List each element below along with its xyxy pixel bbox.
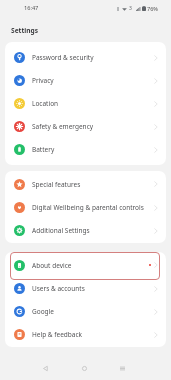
staticText: About device (32, 261, 72, 270)
staticText: 16:47 (24, 4, 39, 12)
button[interactable]: About device (5, 253, 166, 277)
button[interactable]: Help & feedback (5, 323, 166, 346)
button[interactable]: Back (36, 359, 54, 377)
button[interactable]: Privacy (5, 69, 166, 92)
staticText: Users & accounts (32, 284, 85, 293)
staticText: Special features (32, 180, 81, 189)
staticText: Google (32, 307, 54, 316)
button[interactable]: Digital Wellbeing & parental controls (5, 196, 166, 219)
staticText: Password & security (32, 53, 94, 62)
button[interactable]: Recents (113, 359, 131, 377)
button[interactable]: Additional Settings (5, 219, 166, 242)
button[interactable]: Password & security (5, 46, 166, 69)
staticText: Location (32, 99, 59, 108)
staticText: Battery (32, 145, 55, 154)
staticText: 3 (129, 5, 132, 12)
button[interactable]: Home (75, 359, 93, 377)
staticText: 76% (147, 5, 158, 12)
button[interactable]: Users & accounts (5, 277, 166, 300)
staticText: Safety & emergency (32, 122, 94, 131)
staticText: Digital Wellbeing & parental controls (32, 203, 144, 212)
staticText: Help & feedback (32, 330, 83, 339)
staticText: Settings (11, 26, 39, 35)
staticText: Privacy (32, 76, 54, 85)
button[interactable]: Special features (5, 172, 166, 196)
button[interactable]: Safety & emergency (5, 115, 166, 138)
staticText: Additional Settings (32, 226, 90, 235)
button[interactable]: Battery (5, 138, 166, 161)
button[interactable]: Location (5, 92, 166, 115)
button[interactable]: Google (5, 300, 166, 323)
